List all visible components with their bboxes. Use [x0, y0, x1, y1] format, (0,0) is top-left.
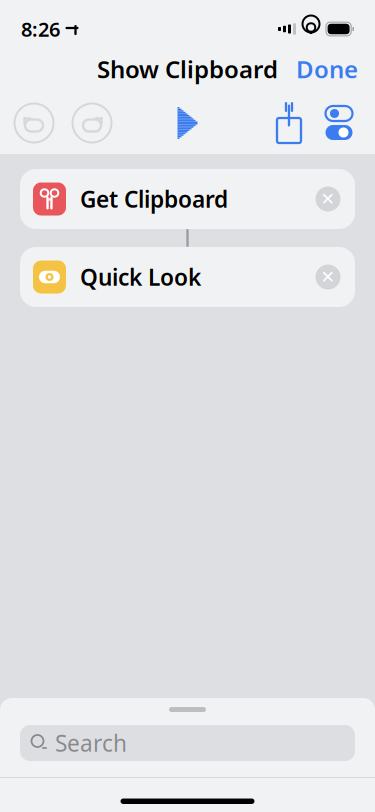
button[interactable]: Get Clipboard	[20, 169, 355, 229]
staticText: 8:26	[21, 16, 60, 42]
staticText: Show Clipboard	[97, 53, 278, 85]
button[interactable]: Undo	[11, 100, 57, 146]
button[interactable]: Quick Look	[20, 247, 355, 307]
staticText: Get Clipboard	[80, 184, 228, 214]
staticText: Quick Look	[80, 262, 201, 292]
staticText: Search	[55, 728, 127, 758]
button[interactable]: Share	[264, 95, 314, 151]
staticText: Done	[296, 53, 358, 85]
staticText: ✕	[320, 267, 335, 287]
button[interactable]: Run shortcut	[161, 95, 217, 151]
button[interactable]: Done	[279, 42, 375, 96]
staticText: ✕	[320, 189, 335, 209]
button[interactable]: Search	[20, 725, 355, 761]
button[interactable]: Redo	[69, 100, 115, 146]
button[interactable]: Settings	[314, 95, 364, 151]
